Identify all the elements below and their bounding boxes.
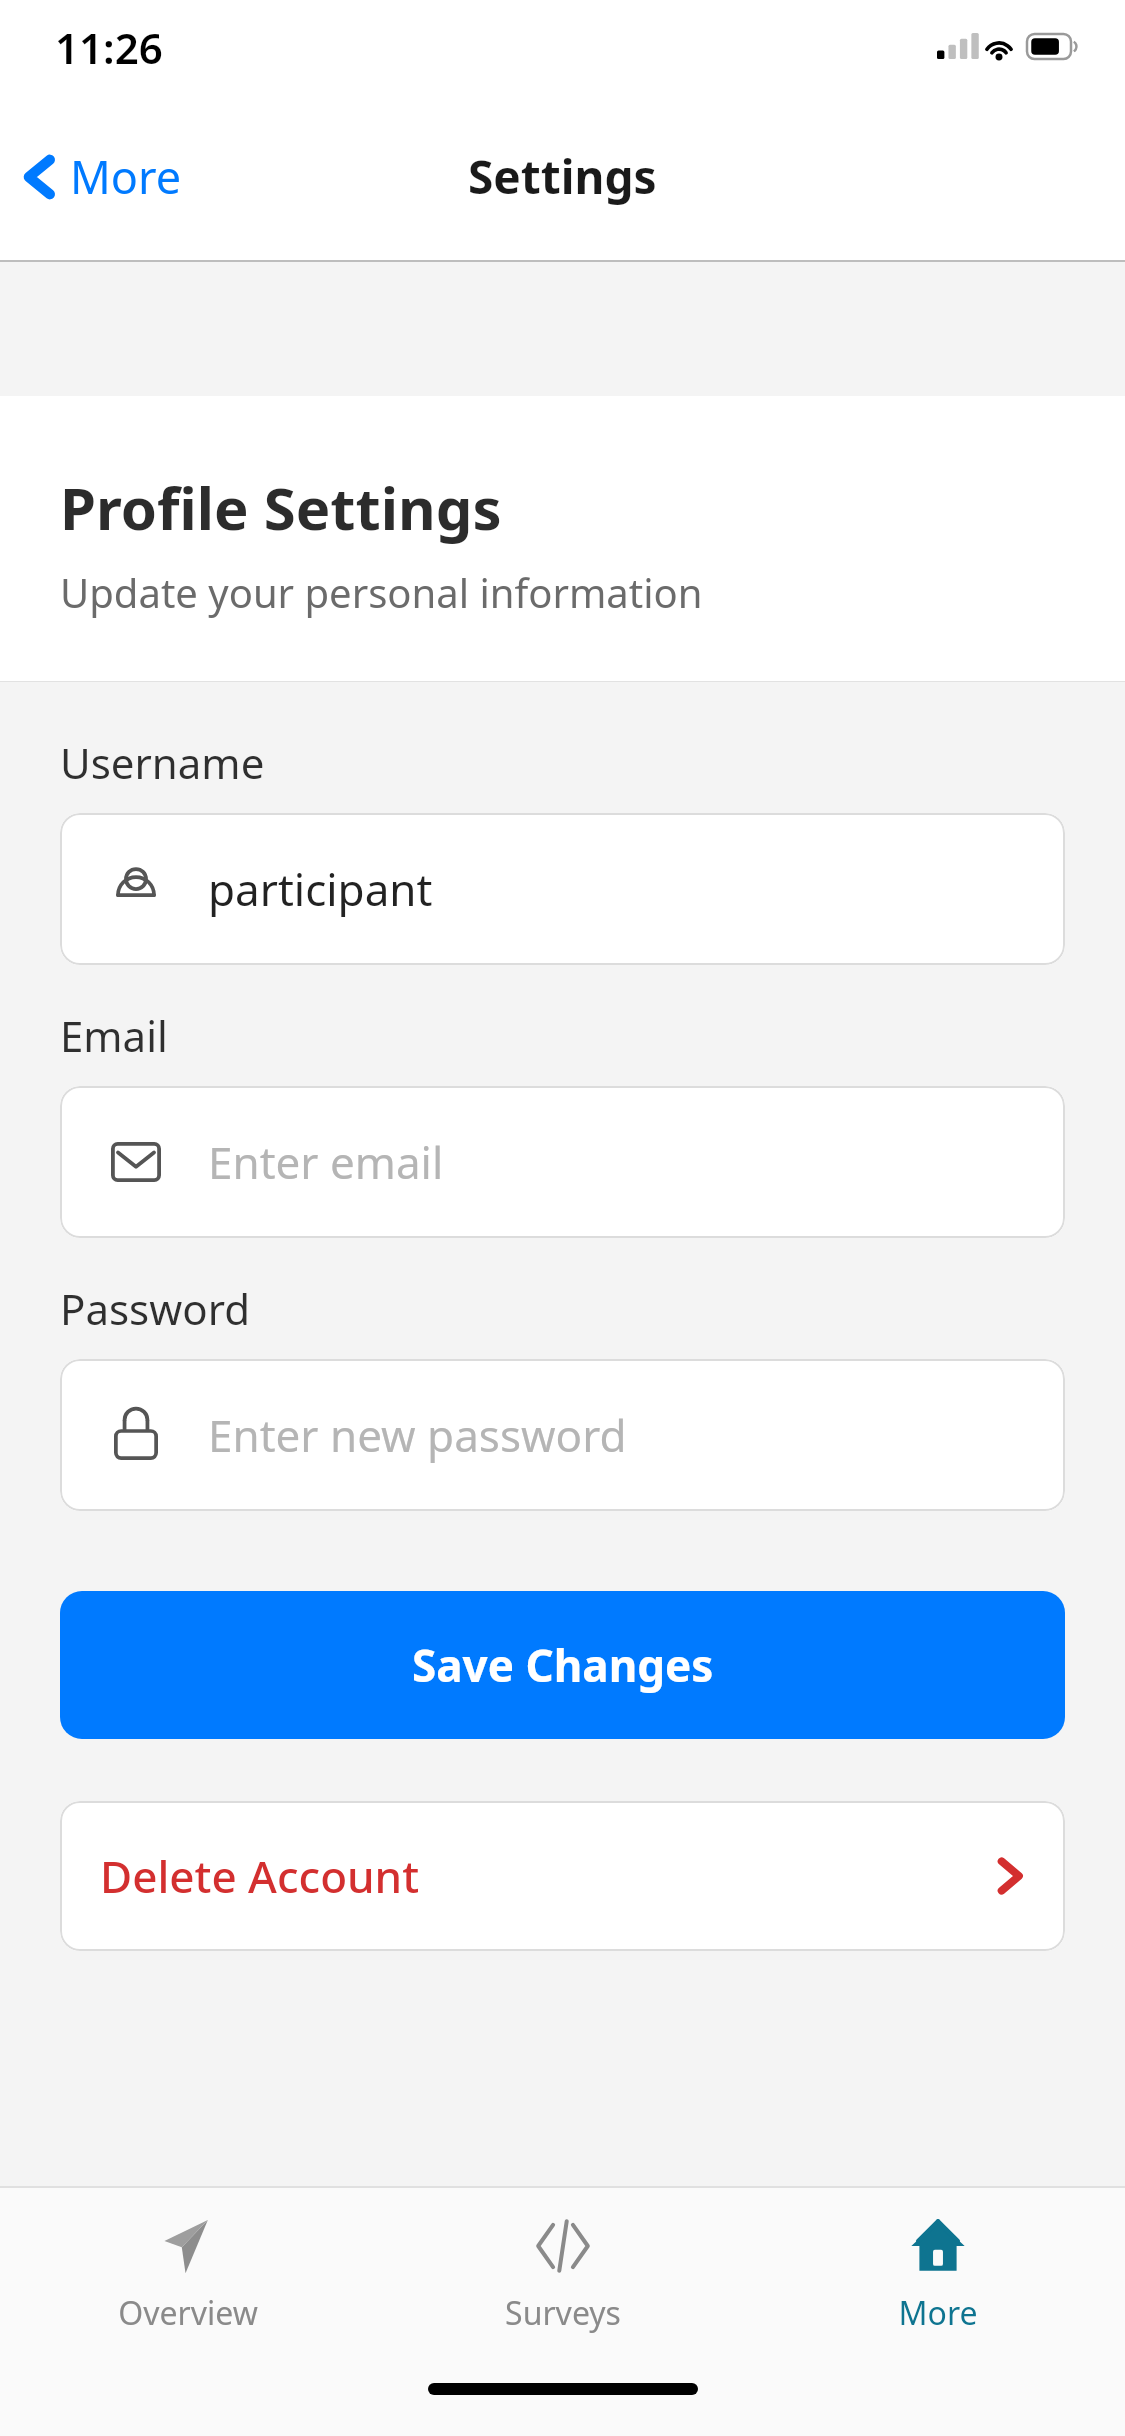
button[interactable]: Save Changes: [60, 1591, 1065, 1739]
staticText: Update your personal information: [60, 565, 703, 619]
staticText: Profile Settings: [60, 468, 502, 547]
button[interactable]: Enter email: [60, 1086, 1065, 1238]
staticText: Email: [60, 1007, 168, 1064]
staticText: Username: [60, 734, 265, 791]
staticText: More: [70, 146, 182, 207]
staticText: More: [898, 2291, 978, 2335]
staticText: Enter new password: [208, 1405, 627, 1465]
button[interactable]: Surveys: [375, 2188, 750, 2358]
staticText: Surveys: [505, 2291, 621, 2335]
staticText: Settings: [468, 145, 657, 208]
button[interactable]: Overview: [0, 2188, 375, 2358]
staticText: 11:26: [55, 19, 163, 76]
staticText: Password: [60, 1280, 250, 1337]
staticText: participant: [208, 859, 433, 919]
staticText: Enter email: [208, 1132, 444, 1192]
staticText: Overview: [118, 2291, 258, 2335]
button[interactable]: More: [750, 2188, 1125, 2358]
button[interactable]: participant: [60, 813, 1065, 965]
staticText: Delete Account: [100, 1846, 420, 1906]
button[interactable]: Delete Account: [60, 1801, 1065, 1951]
staticText: Save Changes: [412, 1635, 714, 1695]
button[interactable]: Enter new password: [60, 1359, 1065, 1511]
button[interactable]: More: [0, 136, 198, 217]
